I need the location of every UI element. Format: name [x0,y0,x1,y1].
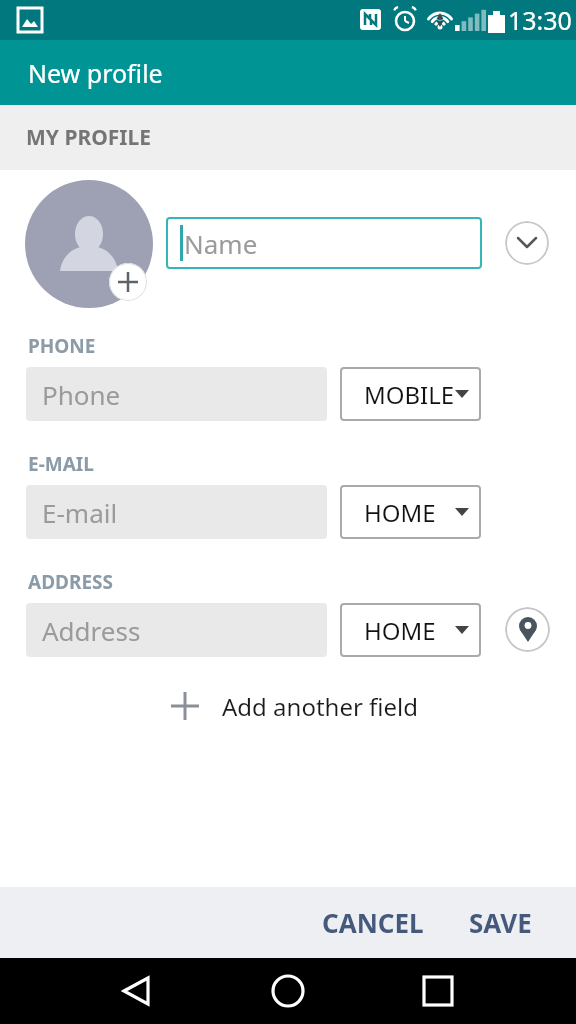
staticText: Name [184,226,258,261]
staticText: MY PROFILE [26,123,152,152]
button[interactable]: HOME [340,603,481,657]
button[interactable]: E-mail [26,485,327,539]
button[interactable] [258,958,318,1024]
button[interactable]: SAVE [469,887,532,958]
staticText: HOME [364,614,436,647]
button[interactable]: Name [166,217,482,269]
staticText: E-mail [42,495,118,530]
staticText: PHONE [28,333,96,357]
staticText: E-MAIL [28,451,94,475]
staticText: 13:30 [508,3,572,37]
button[interactable] [107,958,167,1024]
staticText: SAVE [469,905,532,940]
button[interactable]: Address [26,603,327,657]
staticText: HOME [364,496,436,529]
staticText: CANCEL [322,905,424,940]
button[interactable] [505,607,550,652]
button[interactable]: CANCEL [322,887,424,958]
button[interactable] [408,958,468,1024]
button[interactable] [109,263,147,301]
button[interactable]: Add another field [170,682,419,730]
staticText: New profile [28,56,163,90]
button[interactable] [505,221,549,265]
staticText: Add another field [222,690,419,723]
staticText: ADDRESS [28,569,114,593]
staticText: MOBILE [364,378,455,411]
button[interactable]: Phone [26,367,327,421]
button[interactable]: MOBILE [340,367,481,421]
button[interactable]: HOME [340,485,481,539]
staticText: Phone [42,377,121,412]
staticText: Address [42,613,141,648]
button[interactable] [25,180,153,308]
